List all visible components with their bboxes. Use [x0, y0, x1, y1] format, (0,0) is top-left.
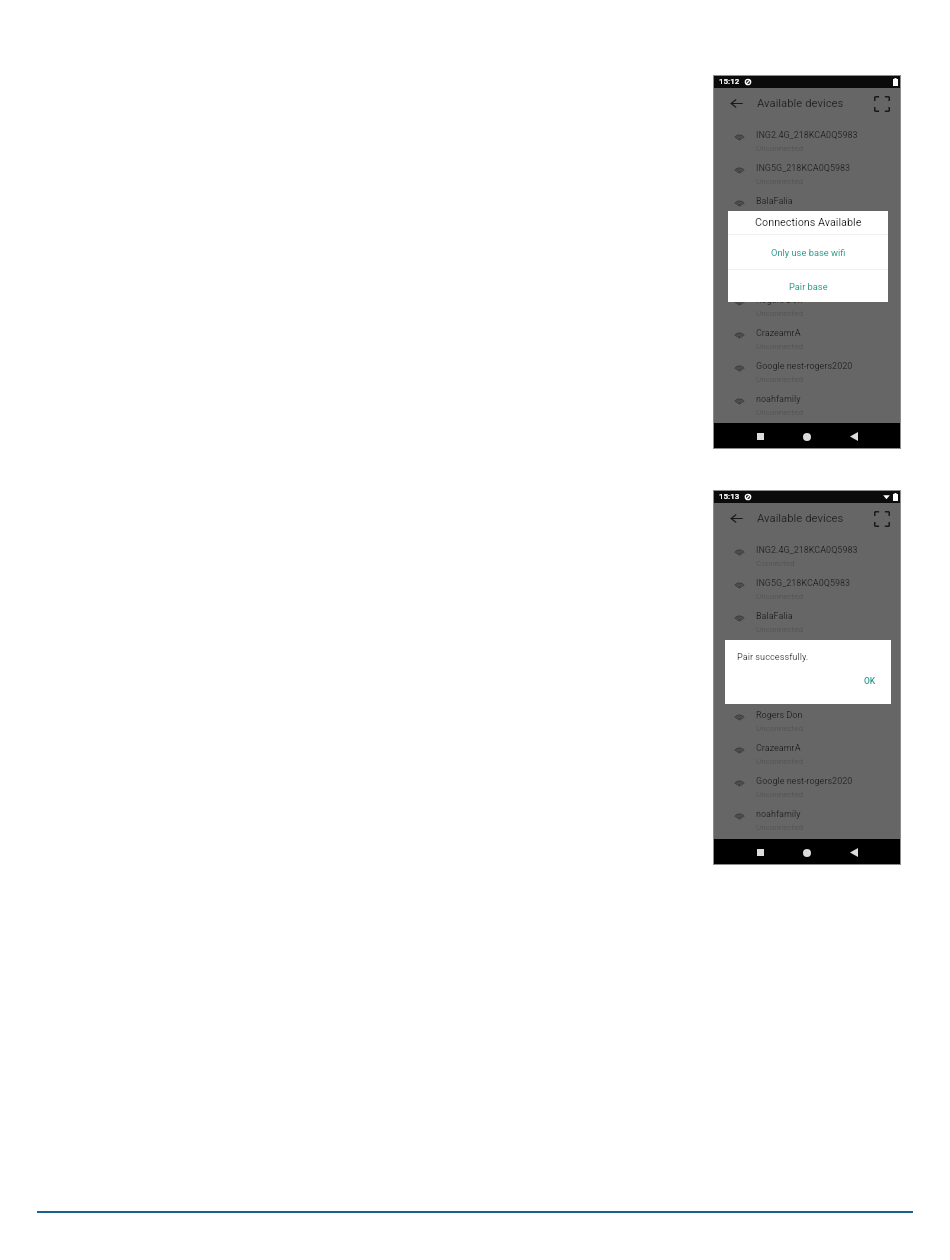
- button[interactable]: OK: [849, 673, 891, 689]
- staticText: CrazeamrA: [756, 743, 801, 754]
- button[interactable]: Home: [796, 426, 817, 447]
- staticText: Unconnected: [756, 243, 803, 252]
- staticText: 15:13: [719, 492, 740, 501]
- staticText: Available devices: [757, 512, 844, 525]
- button[interactable]: Home: [796, 842, 817, 863]
- button[interactable]: noahfamily: [713, 384, 901, 417]
- button[interactable]: BalaFalia: [713, 186, 901, 219]
- staticText: Unconnected: [756, 790, 803, 799]
- button[interactable]: TELUS9274: [713, 252, 901, 285]
- staticText: CrazeamrA: [756, 328, 801, 339]
- staticText: ING5G_218KCA0Q5983: [756, 578, 851, 589]
- staticText: Connections Available: [755, 216, 862, 229]
- staticText: Unconnected: [756, 144, 803, 153]
- button[interactable]: Scan QR code: [870, 507, 893, 530]
- button[interactable]: Back: [727, 94, 745, 112]
- staticText: 15:12: [719, 77, 740, 86]
- button[interactable]: noahfamily: [713, 799, 901, 832]
- staticText: Unconnected: [756, 375, 803, 384]
- button[interactable]: Rogers Don: [713, 700, 901, 733]
- button[interactable]: Recents: [750, 842, 771, 863]
- button[interactable]: CrazeamrA: [713, 733, 901, 766]
- staticText: Unconnected: [756, 342, 803, 351]
- staticText: ING2.4G_218KCA0Q5983: [756, 545, 858, 556]
- staticText: Available devices: [757, 97, 844, 110]
- staticText: ING2.4G_218KCA0Q5983: [756, 130, 858, 141]
- button[interactable]: Back: [843, 842, 864, 863]
- staticText: Google nest-rogers2020: [756, 776, 853, 787]
- button[interactable]: BalaFalia: [713, 601, 901, 634]
- staticText: Linksys24: [756, 644, 797, 655]
- button[interactable]: Recents: [750, 426, 771, 447]
- staticText: Linksys24: [756, 229, 797, 240]
- button[interactable]: CrazeamrA: [713, 318, 901, 351]
- staticText: Unconnected: [756, 592, 803, 601]
- staticText: ING5G_218KCA0Q5983: [756, 163, 851, 174]
- staticText: Pair base: [789, 281, 828, 292]
- staticText: Unconnected: [756, 309, 803, 318]
- staticText: Unconnected: [756, 276, 803, 285]
- button[interactable]: Rogers Don: [713, 285, 901, 318]
- staticText: BalaFalia: [756, 611, 793, 622]
- button[interactable]: Google nest-rogers2020: [713, 351, 901, 384]
- staticText: Unconnected: [756, 757, 803, 766]
- button[interactable]: ING2.4G_218KCA0Q5983: [713, 120, 901, 153]
- staticText: noahfamily: [756, 809, 801, 820]
- staticText: OK: [864, 676, 876, 686]
- staticText: Only use base wifi: [771, 247, 846, 258]
- button[interactable]: Back: [727, 509, 745, 527]
- staticText: BalaFalia: [756, 196, 793, 207]
- staticText: Connected: [756, 559, 795, 568]
- staticText: Unconnected: [756, 625, 803, 634]
- staticText: Google nest-rogers2020: [756, 361, 853, 372]
- button[interactable]: Pair base: [728, 270, 888, 302]
- button[interactable]: Scan QR code: [870, 92, 893, 115]
- staticText: Rogers Don: [756, 710, 803, 721]
- staticText: Unconnected: [756, 177, 803, 186]
- staticText: noahfamily: [756, 394, 801, 405]
- button[interactable]: Linksys24: [713, 219, 901, 252]
- button[interactable]: ING5G_218KCA0Q5983: [713, 568, 901, 601]
- button[interactable]: Google nest-rogers2020: [713, 766, 901, 799]
- button[interactable]: ING5G_218KCA0Q5983: [713, 153, 901, 186]
- staticText: Unconnected: [756, 823, 803, 832]
- button[interactable]: Linksys24: [713, 634, 901, 667]
- staticText: Unconnected: [756, 658, 803, 667]
- staticText: Rogers Don: [756, 295, 803, 306]
- button[interactable]: TELUS9274: [713, 667, 901, 700]
- button[interactable]: Back: [843, 426, 864, 447]
- staticText: Unconnected: [756, 408, 803, 417]
- button[interactable]: Only use base wifi: [728, 235, 888, 269]
- button[interactable]: ING2.4G_218KCA0Q5983: [713, 535, 901, 568]
- staticText: TELUS9274: [756, 262, 803, 273]
- staticText: Unconnected: [756, 724, 803, 733]
- staticText: Unconnected: [756, 210, 803, 219]
- staticText: Pair successfully.: [737, 651, 809, 662]
